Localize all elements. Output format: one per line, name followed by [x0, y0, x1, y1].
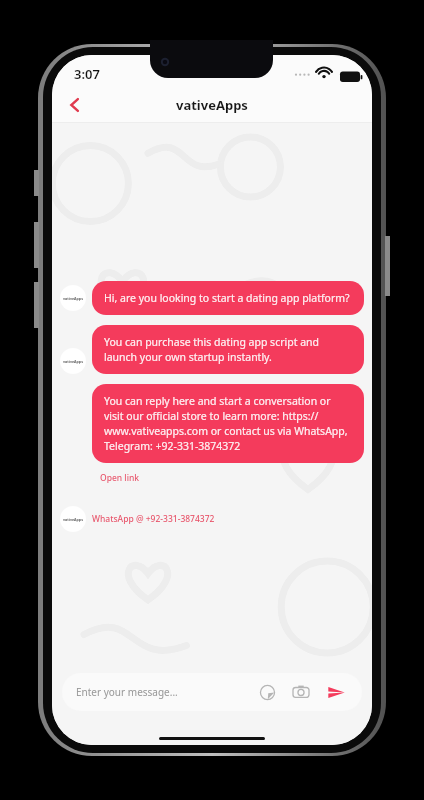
staticText: vativeApps: [63, 517, 83, 522]
button[interactable]: You can purchase this dating app script …: [92, 325, 364, 374]
staticText: vativeApps: [63, 296, 83, 301]
button[interactable]: WhatsApp @ +92-331-3874372: [92, 513, 215, 525]
staticText: vativeApps: [176, 96, 248, 114]
button[interactable]: Enter your message...: [62, 673, 362, 711]
staticText: You can purchase this dating app script …: [104, 335, 352, 364]
staticText: Hi, are you looking to start a dating ap…: [104, 291, 350, 305]
button[interactable]: Back: [58, 88, 92, 122]
button[interactable]: Open link: [100, 472, 140, 484]
button[interactable]: Hi, are you looking to start a dating ap…: [92, 281, 364, 315]
button[interactable]: Send: [324, 680, 348, 704]
staticText: WhatsApp @ +92-331-3874372: [92, 513, 215, 525]
staticText: 3:07: [74, 65, 100, 83]
staticText: Open link: [100, 472, 140, 484]
staticText: You can reply here and start a conversat…: [104, 394, 352, 453]
staticText: Enter your message...: [76, 685, 178, 699]
button[interactable]: Sticker: [256, 681, 278, 703]
button[interactable]: You can reply here and start a conversat…: [92, 384, 364, 463]
button[interactable]: Camera: [290, 681, 312, 703]
staticText: vativeApps: [63, 359, 83, 364]
